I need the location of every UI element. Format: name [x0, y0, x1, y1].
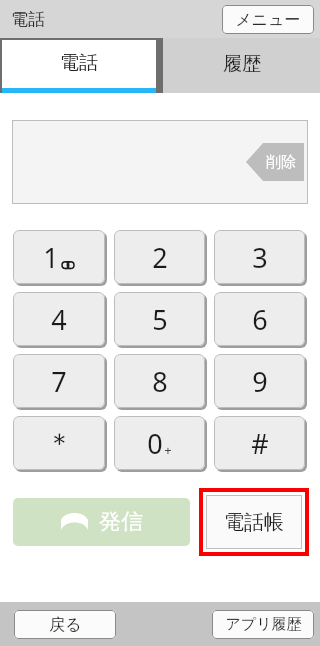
staticText: # [251, 425, 269, 462]
button[interactable]: メニュー [222, 5, 314, 34]
button[interactable]: 電話 [2, 40, 156, 93]
staticText: 電話 [11, 9, 45, 30]
staticText: 電話 [60, 51, 98, 75]
button[interactable]: 8 [114, 354, 207, 410]
staticText: 7 [51, 363, 67, 400]
staticText: 4 [51, 301, 67, 338]
staticText: 電話帳 [224, 510, 284, 535]
staticText: ＊ [46, 426, 73, 460]
staticText: + [164, 441, 172, 459]
button[interactable]: 戻る [14, 610, 116, 639]
staticText: 0 [147, 425, 163, 462]
button[interactable]: ＊ [13, 416, 107, 472]
button[interactable]: 削除 [12, 120, 308, 204]
button[interactable]: 0 [114, 416, 207, 472]
button[interactable]: 2 [114, 230, 207, 286]
button[interactable]: 6 [214, 292, 307, 348]
staticText: 6 [252, 301, 268, 338]
staticText: 3 [252, 239, 268, 276]
button[interactable]: 発信 [13, 498, 190, 546]
staticText: 5 [152, 301, 168, 338]
button[interactable]: 9 [214, 354, 307, 410]
button[interactable]: 履歴 [163, 40, 320, 93]
button[interactable]: 5 [114, 292, 207, 348]
button[interactable]: 7 [13, 354, 107, 410]
button[interactable]: 4 [13, 292, 107, 348]
button[interactable]: 1 [13, 230, 107, 286]
staticText: 1 [43, 239, 59, 276]
button[interactable]: 削除 [246, 143, 304, 181]
staticText: 削除 [266, 153, 296, 172]
staticText: 履歴 [223, 52, 261, 76]
staticText: 戻る [49, 615, 82, 635]
staticText: アプリ履歴 [225, 615, 302, 634]
staticText: 発信 [99, 508, 143, 536]
staticText: 9 [252, 363, 268, 400]
button[interactable]: 電話帳 [206, 495, 302, 549]
staticText: 8 [152, 363, 168, 400]
button[interactable]: アプリ履歴 [212, 610, 314, 639]
button[interactable]: # [214, 416, 307, 472]
staticText: 2 [152, 239, 168, 276]
button[interactable]: 3 [214, 230, 307, 286]
staticText: メニュー [235, 10, 301, 30]
